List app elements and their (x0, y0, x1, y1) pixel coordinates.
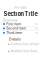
staticText: Third item (6, 31, 22, 35)
staticText: Overview (3, 19, 17, 22)
button[interactable]: First item (3, 22, 38, 26)
staticText: Another line here (10, 49, 37, 53)
staticText: Section Title (3, 11, 37, 17)
staticText: Details (9, 37, 21, 41)
staticText: my app (14, 6, 26, 9)
button[interactable]: Second item (3, 26, 38, 31)
staticText: First item (6, 22, 21, 26)
staticText: Second item (6, 26, 26, 30)
button[interactable]: Third item (3, 31, 38, 35)
staticText: A short line of text (10, 42, 39, 46)
